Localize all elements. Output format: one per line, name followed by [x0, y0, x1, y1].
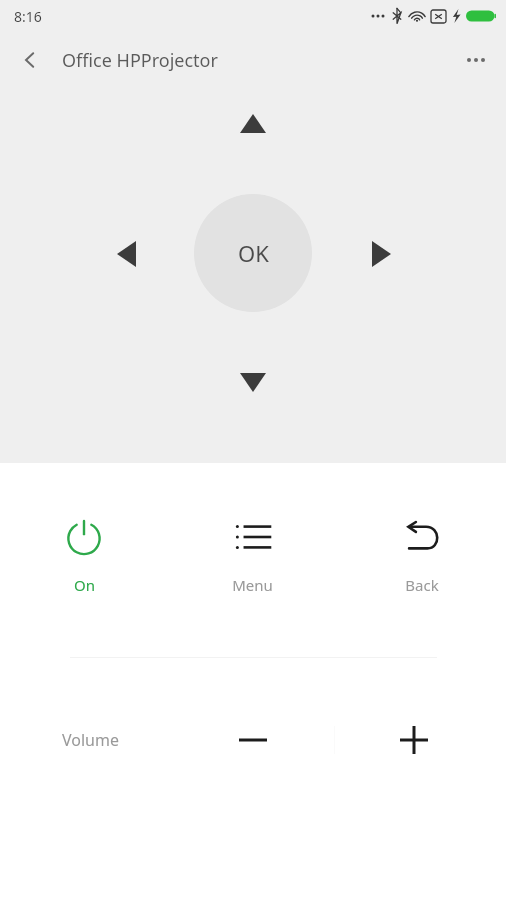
staticText: 8:16: [14, 7, 42, 26]
button[interactable]: Down: [225, 360, 281, 404]
button[interactable]: Up: [225, 101, 281, 145]
staticText: Menu: [232, 575, 273, 595]
button[interactable]: More options: [454, 38, 498, 82]
button[interactable]: Volume down: [211, 711, 295, 769]
staticText: On: [74, 575, 95, 595]
button[interactable]: Right: [353, 226, 409, 282]
staticText: OK: [238, 238, 269, 268]
button[interactable]: Back: [337, 511, 506, 601]
button[interactable]: Menu: [168, 511, 337, 601]
staticText: Back: [405, 575, 439, 595]
button[interactable]: OK: [194, 194, 312, 312]
button[interactable]: Back: [8, 38, 52, 82]
staticText: Volume: [62, 729, 119, 751]
button[interactable]: Volume up: [372, 711, 456, 769]
button[interactable]: On: [0, 511, 168, 601]
button[interactable]: Left: [98, 226, 154, 282]
staticText: Office HPProjector: [62, 48, 218, 73]
